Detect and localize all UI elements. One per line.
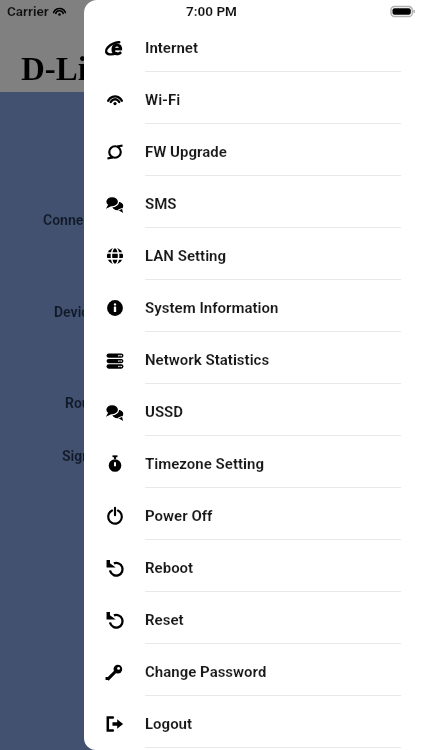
button[interactable]: USSD xyxy=(84,386,422,438)
staticText: USSD xyxy=(145,403,184,421)
button[interactable]: Network Statistics xyxy=(84,334,422,386)
button[interactable]: Wi-Fi xyxy=(84,74,422,126)
button[interactable]: FW Upgrade xyxy=(84,126,422,178)
staticText: Internet xyxy=(145,39,199,57)
button[interactable]: LAN Setting xyxy=(84,230,422,282)
staticText: Device Name xyxy=(54,304,137,320)
button[interactable]: Reset xyxy=(84,594,422,646)
button[interactable]: Power Off xyxy=(84,490,422,542)
staticText: Reboot xyxy=(145,559,194,577)
button[interactable]: System Information xyxy=(84,282,422,334)
staticText: LAN Setting xyxy=(145,247,227,265)
staticText: Logout xyxy=(145,715,193,733)
staticText: Signal xyxy=(62,448,102,464)
staticText: Change Password xyxy=(145,663,267,681)
staticText: Network Statistics xyxy=(145,351,270,369)
staticText: SMS xyxy=(145,195,177,213)
button[interactable]: Change Password xyxy=(84,646,422,698)
staticText: Timezone Setting xyxy=(145,455,265,473)
staticText: Router xyxy=(65,395,108,411)
staticText: Reset xyxy=(145,611,184,629)
button[interactable]: SMS xyxy=(84,178,422,230)
button[interactable]: e xyxy=(84,22,422,74)
staticText: 7:00 PM xyxy=(186,3,237,19)
staticText: System Information xyxy=(145,299,279,317)
button[interactable]: Logout xyxy=(84,698,422,750)
staticText: FW Upgrade xyxy=(145,143,227,161)
staticText: e xyxy=(111,36,123,61)
button[interactable]: Timezone Setting xyxy=(84,438,422,490)
staticText: Connected Time xyxy=(43,212,146,228)
staticText: Carrier xyxy=(7,3,49,19)
button[interactable]: Reboot xyxy=(84,542,422,594)
staticText: D-Link xyxy=(21,51,124,88)
staticText: Power Off xyxy=(145,507,213,525)
staticText: Wi-Fi xyxy=(145,91,181,109)
